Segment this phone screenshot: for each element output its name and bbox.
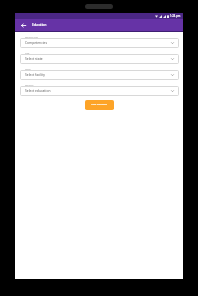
staticText: Select facility: [25, 72, 45, 76]
staticText: Competencies: [25, 40, 48, 44]
staticText: Facility: [25, 68, 31, 70]
button[interactable]: Back: [18, 20, 29, 31]
staticText: Education: [32, 23, 47, 27]
staticText: 1:24 pm: [170, 14, 181, 18]
button[interactable]: Select facility: [20, 70, 179, 80]
button[interactable]: Select education: [20, 86, 179, 96]
staticText: Load education: [91, 103, 108, 106]
staticText: State: [25, 52, 30, 54]
button[interactable]: Competencies: [20, 38, 179, 48]
staticText: Education Type: [25, 36, 38, 38]
staticText: Select education: [25, 88, 51, 92]
staticText: Education: [25, 84, 34, 86]
staticText: Select state: [25, 56, 43, 60]
button[interactable]: Select state: [20, 54, 179, 64]
button[interactable]: Load education: [85, 100, 114, 110]
